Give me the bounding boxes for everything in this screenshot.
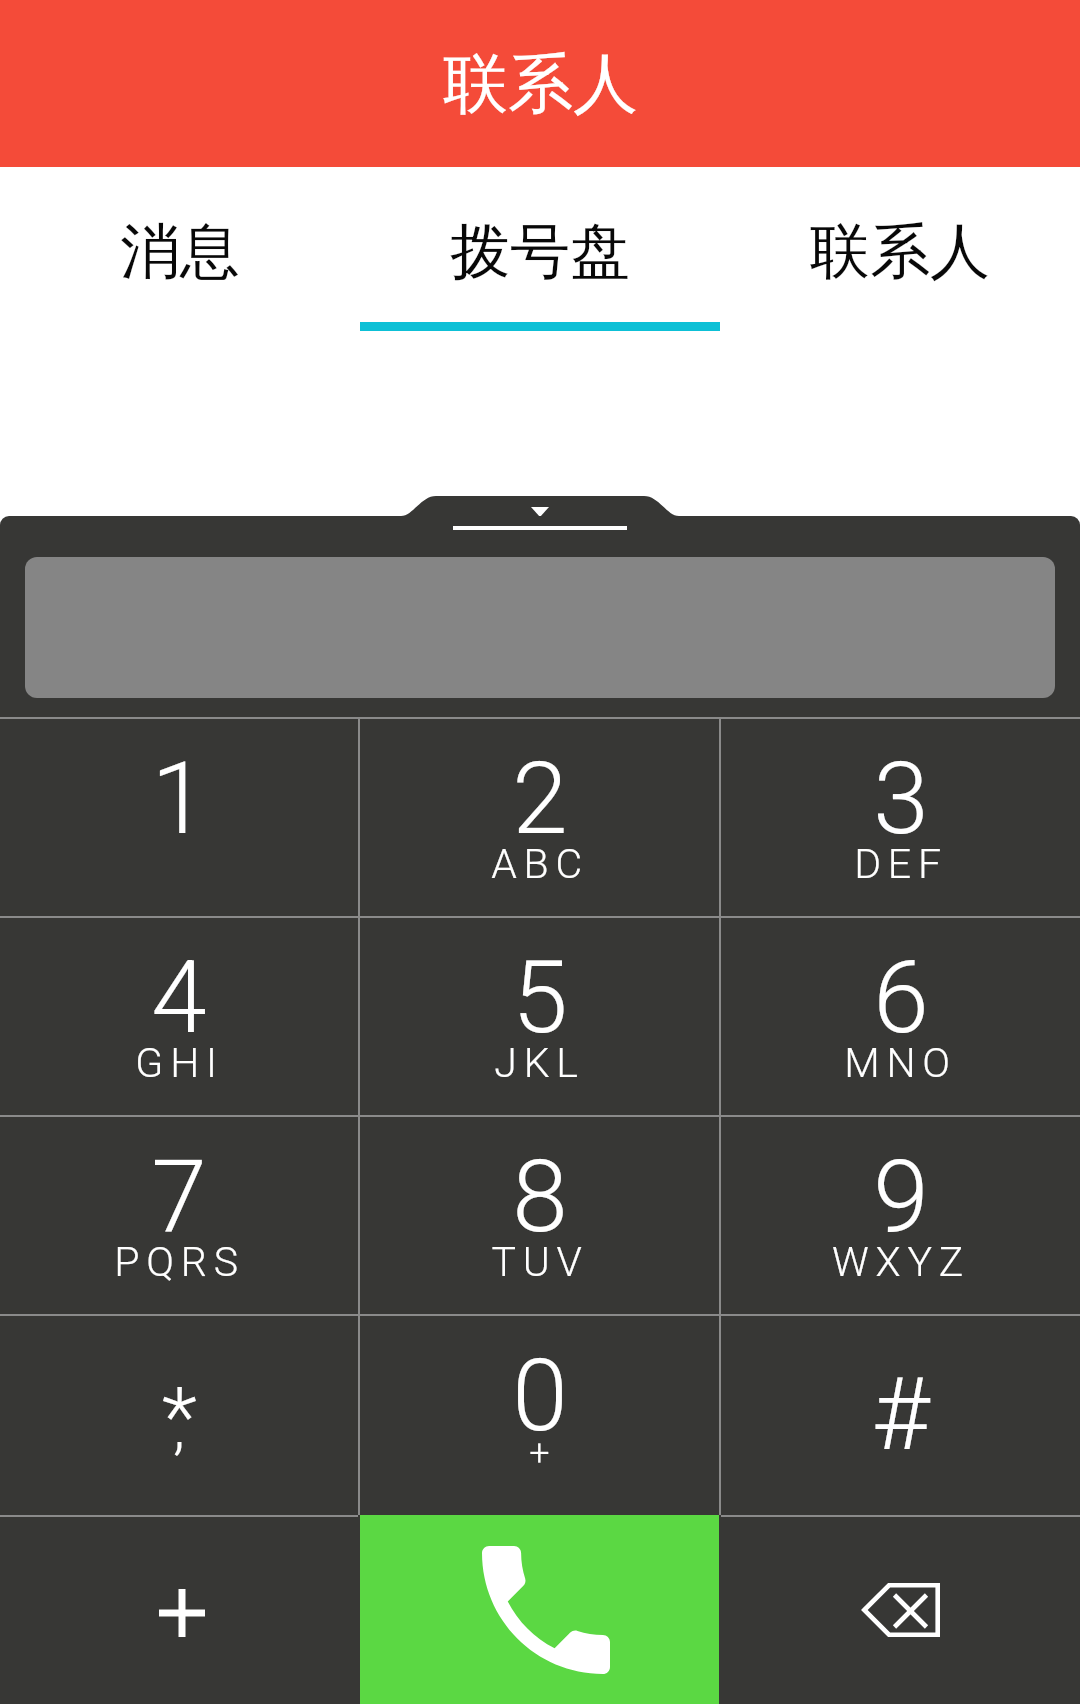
staticText: 拨号盘 <box>450 214 630 290</box>
staticText: + <box>529 1432 550 1474</box>
staticText: 5 <box>512 939 568 1056</box>
button[interactable]: Call <box>360 1515 719 1704</box>
button[interactable]: 6 <box>721 918 1080 1115</box>
button[interactable]: 2 <box>360 719 719 916</box>
button[interactable]: 消息 <box>0 167 360 332</box>
button[interactable]: 0 <box>360 1316 719 1515</box>
button[interactable]: # <box>721 1316 1080 1515</box>
staticText: 联系人 <box>443 43 638 125</box>
staticText: 1 <box>151 740 207 857</box>
staticText: 6 <box>873 939 929 1056</box>
staticText: 0 <box>512 1337 568 1454</box>
button[interactable]: 5 <box>360 918 719 1115</box>
staticText: TUV <box>491 1238 589 1286</box>
staticText: ABC <box>491 840 589 888</box>
staticText: 8 <box>512 1138 568 1255</box>
button[interactable]: 3 <box>721 719 1080 916</box>
staticText: PQRS <box>114 1238 245 1286</box>
staticText: DEF <box>854 840 948 888</box>
staticText: 联系人 <box>810 214 990 290</box>
button[interactable]: Backspace <box>721 1515 1080 1704</box>
button[interactable]: Hide dial pad <box>401 496 679 516</box>
staticText: 9 <box>873 1138 929 1255</box>
staticText: , <box>173 1390 185 1463</box>
staticText: 3 <box>873 740 929 857</box>
button[interactable]: 9 <box>721 1117 1080 1314</box>
staticText: GHI <box>135 1039 224 1087</box>
staticText: MNO <box>844 1039 957 1087</box>
button[interactable]: 联系人 <box>720 167 1080 332</box>
staticText: 2 <box>512 740 568 857</box>
staticText: WXYZ <box>832 1238 970 1286</box>
button[interactable]: Add plus sign <box>0 1515 358 1704</box>
button[interactable]: 拨号盘 <box>360 167 720 332</box>
staticText: 消息 <box>120 214 240 290</box>
button[interactable]: 1 <box>0 719 358 916</box>
staticText: * <box>162 1369 197 1465</box>
staticText: 4 <box>151 939 207 1056</box>
button[interactable]: * <box>0 1316 358 1515</box>
button[interactable]: 4 <box>0 918 358 1115</box>
staticText: JKL <box>494 1039 585 1087</box>
button[interactable]: 7 <box>0 1117 358 1314</box>
staticText: # <box>871 1356 930 1473</box>
staticText: 7 <box>151 1138 207 1255</box>
button[interactable]: 8 <box>360 1117 719 1314</box>
